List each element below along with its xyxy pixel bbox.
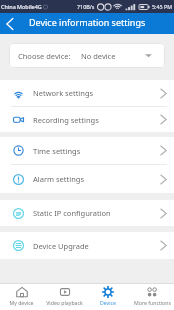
staticText: Alarm settings [33,174,85,184]
staticText: 710B/s [77,3,95,10]
staticText: China Mobile4G [1,3,42,10]
button[interactable]: Network settings [0,80,174,106]
button[interactable]: More functions [130,284,174,310]
button[interactable]: Time settings [0,137,174,164]
button[interactable]: Device [86,284,130,310]
button[interactable]: My device [0,284,43,310]
button[interactable]: IP [0,200,174,226]
button[interactable]: Recording settings [0,107,174,132]
staticText: Choose device: [18,51,71,61]
button[interactable]: Alarm settings [0,165,174,193]
staticText: Network settings [33,88,94,98]
button[interactable]: Choose device: [9,43,165,68]
button[interactable]: Back [0,13,19,34]
staticText: More functions [134,299,171,306]
staticText: Video playback [46,299,83,306]
staticText: 5:45 PM [152,3,173,10]
button[interactable]: Video playback [43,284,86,310]
staticText: Time settings [33,146,81,156]
staticText: Static IP configuration [33,208,111,218]
staticText: IP [16,210,22,217]
staticText: Device Upgrade [33,241,89,251]
staticText: Recording settings [33,115,99,125]
button[interactable]: Device Upgrade [0,232,174,259]
staticText: My device [9,299,34,306]
staticText: No device [81,51,116,61]
staticText: Device information settings [29,16,146,28]
staticText: Device [100,299,116,306]
